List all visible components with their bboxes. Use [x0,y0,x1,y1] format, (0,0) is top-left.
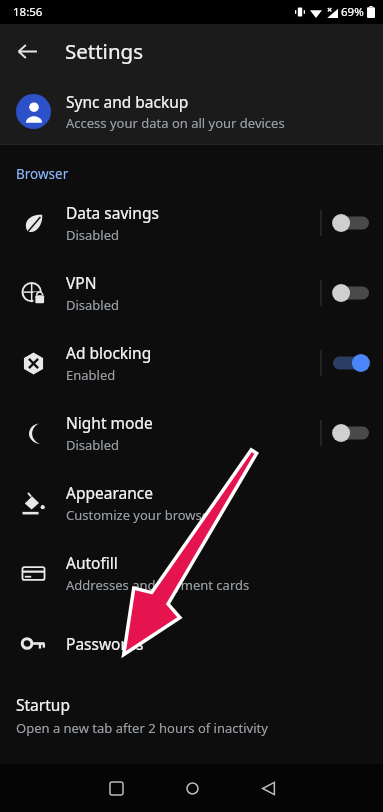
staticText: Disabled [66,296,120,314]
staticText: 18:56 [13,4,43,20]
staticText: Disabled [66,436,120,454]
button[interactable]: Appearance [0,468,383,538]
staticText: Appearance [66,482,153,503]
button[interactable]: VPN [0,258,383,328]
button[interactable]: Back [6,30,48,72]
staticText: Startup [16,694,70,715]
button[interactable]: Autofill [0,538,383,608]
staticText: Passwords [66,633,144,654]
button[interactable]: Ad blocking [0,328,383,398]
staticText: Access your data on all your devices [66,114,285,132]
staticText: Customize your browser [66,506,215,524]
button[interactable]: Home [154,764,230,812]
staticText: 69% [341,4,364,20]
button[interactable]: Startup [0,690,383,747]
button[interactable]: Passwords [0,608,383,678]
staticText: Addresses and payment cards [66,576,250,594]
staticText: Open a new tab after 2 hours of inactivi… [16,719,268,737]
button[interactable]: Recents [78,764,154,812]
button[interactable]: Toggle on [325,340,377,386]
staticText: Settings [65,37,144,65]
staticText: Ad blocking [66,342,152,363]
button[interactable]: Back [230,764,306,812]
staticText: Enabled [66,366,116,384]
staticText: Browser [16,165,69,183]
button[interactable]: Sync and backup [0,78,383,144]
staticText: Autofill [66,552,118,573]
staticText: Night mode [66,412,153,433]
staticText: Sync and backup [66,91,189,112]
button[interactable]: Toggle off [325,410,377,456]
button[interactable]: Night mode [0,398,383,468]
staticText: VPN [66,272,97,293]
button[interactable]: Toggle off [325,270,377,316]
button[interactable]: Toggle off [325,200,377,246]
staticText: Data savings [66,202,159,223]
staticText: Disabled [66,226,120,244]
button[interactable]: Data savings [0,188,383,258]
